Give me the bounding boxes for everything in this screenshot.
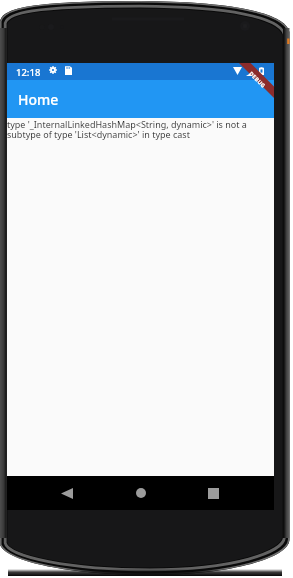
staticText: type '_InternalLinkedHashMap<String, dyn… xyxy=(7,118,274,140)
button[interactable]: Home xyxy=(116,476,165,510)
staticText: Home xyxy=(18,90,59,109)
staticText: DEBUG xyxy=(248,70,268,90)
button[interactable]: Back xyxy=(42,476,91,510)
button[interactable]: Recent apps xyxy=(189,476,238,510)
staticText: 12:18 xyxy=(16,66,41,79)
